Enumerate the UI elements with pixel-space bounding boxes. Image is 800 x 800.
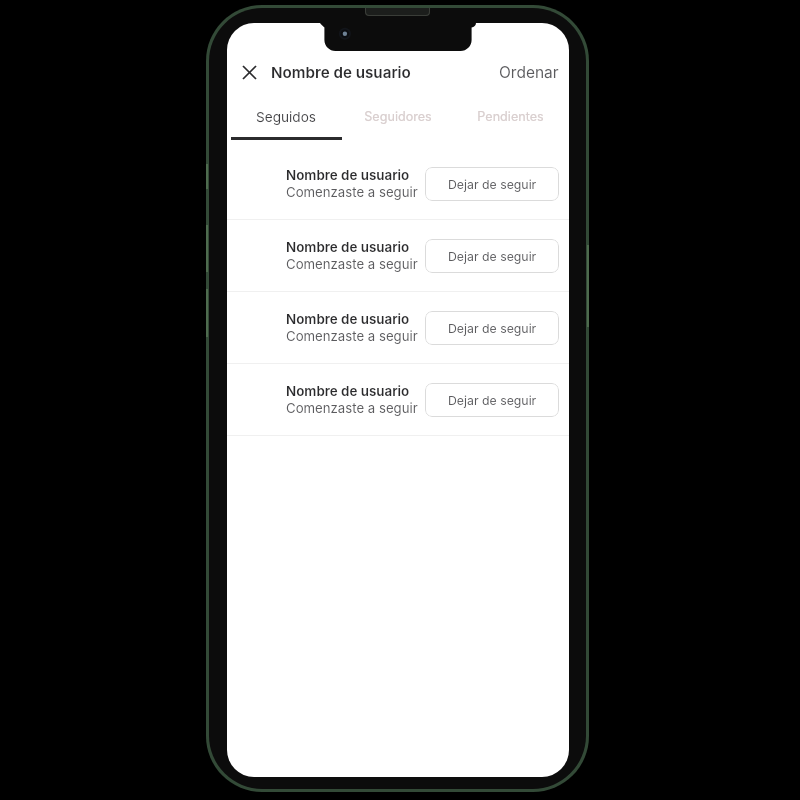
staticText: Nombre de usuario [286, 239, 410, 255]
staticText: Dejar de seguir [448, 321, 537, 336]
staticText: Seguidores [364, 109, 432, 124]
staticText: Nombre de usuario [286, 167, 410, 183]
staticText: Nombre de usuario [286, 311, 410, 327]
staticText: Seguidos [256, 109, 316, 125]
button[interactable]: Dejar de seguir [425, 239, 559, 273]
staticText: Ordenar [499, 63, 559, 82]
button[interactable]: Cerrar [227, 48, 272, 96]
button[interactable]: Nombre de usuario [227, 220, 569, 291]
button[interactable]: Dejar de seguir [425, 167, 559, 201]
button[interactable]: Nombre de usuario [227, 148, 569, 219]
staticText: Dejar de seguir [448, 393, 537, 408]
button[interactable]: Ordenar [489, 48, 569, 96]
staticText: Nombre de usuario [286, 383, 410, 399]
staticText: Dejar de seguir [448, 249, 537, 264]
staticText: Nombre de usuario [271, 63, 411, 81]
button[interactable]: Dejar de seguir [425, 383, 559, 417]
button[interactable]: Nombre de usuario [227, 364, 569, 435]
staticText: Pendientes [477, 109, 544, 124]
button[interactable]: Pendientes [454, 96, 566, 137]
button[interactable]: Seguidores [342, 96, 454, 137]
staticText: Dejar de seguir [448, 177, 537, 192]
staticText: Comenzaste a seguir [286, 256, 418, 272]
button[interactable]: Dejar de seguir [425, 311, 559, 345]
staticText: Comenzaste a seguir [286, 328, 418, 344]
button[interactable]: Nombre de usuario [227, 292, 569, 363]
staticText: Comenzaste a seguir [286, 184, 418, 200]
button[interactable]: Seguidos [230, 96, 342, 137]
staticText: Comenzaste a seguir [286, 400, 418, 416]
